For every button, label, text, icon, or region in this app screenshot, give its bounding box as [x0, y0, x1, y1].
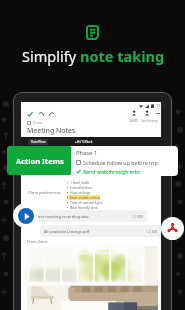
staticText: Send walkthrough info.	[83, 168, 141, 175]
staticText: Simplify	[22, 46, 80, 66]
staticText: Tons of natural light	[70, 200, 102, 205]
button[interactable]: Action Items	[7, 146, 72, 175]
staticText: Schedule follow up before trip.	[83, 159, 160, 166]
staticText: 1 level, bath	[70, 180, 90, 185]
button[interactable]: All available Listings.pdf	[40, 225, 161, 237]
staticText: note taking	[80, 46, 165, 66]
staticText: Near visible school	[70, 195, 100, 200]
staticText: High ceilings	[70, 190, 91, 195]
staticText: +4h/12Block	[75, 140, 93, 144]
staticText: All available Listings.pdf	[44, 229, 90, 234]
button[interactable]: client meeting recording.wav	[30, 210, 147, 222]
staticText: Meeting Notes	[27, 126, 76, 136]
staticText: From client:	[27, 239, 48, 244]
staticText: Client preferences:	[28, 190, 62, 195]
staticText: 11:30	[156, 103, 167, 108]
staticText: 1.2 MB	[146, 229, 157, 234]
staticText: SAVED See history	[129, 119, 158, 123]
staticText: Island kitchen	[70, 185, 93, 190]
button[interactable]: Play recording	[13, 203, 38, 228]
staticText: Bike friendly area	[70, 205, 98, 210]
staticText: client meeting recording.wav	[34, 214, 89, 219]
staticText: Action Items	[16, 156, 64, 166]
button[interactable]: Phase 1	[71, 146, 178, 176]
staticText: Done	[33, 120, 43, 125]
button[interactable]: Open PDF	[161, 217, 184, 240]
staticText: Date/Time	[31, 140, 46, 144]
staticText: Phase 1	[76, 149, 98, 157]
staticText: 7.2 MB	[132, 214, 143, 219]
